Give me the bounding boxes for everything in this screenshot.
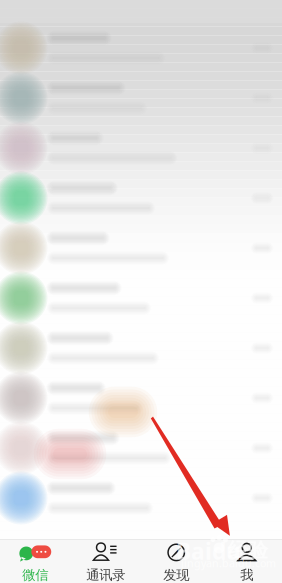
button[interactable]: 我 [211, 540, 282, 583]
button[interactable] [0, 123, 282, 173]
staticText: 经验 [228, 538, 268, 563]
button[interactable]: 通讯录 [70, 540, 141, 583]
staticText: 我 [240, 567, 253, 583]
button[interactable] [0, 73, 282, 123]
button[interactable] [0, 323, 282, 373]
button[interactable]: 发现 [141, 540, 211, 583]
button[interactable]: 微信 [0, 540, 70, 583]
staticText: 通讯录 [86, 567, 125, 583]
button[interactable] [0, 173, 282, 223]
button[interactable] [0, 273, 282, 323]
button[interactable] [0, 423, 282, 473]
button[interactable] [0, 373, 282, 423]
staticText: jingyan.baidu.com [181, 556, 276, 570]
staticText: 发现 [163, 567, 189, 583]
button[interactable] [0, 23, 282, 73]
button[interactable] [0, 473, 282, 523]
staticText: 微信 [22, 567, 48, 583]
staticText: Baidu [176, 536, 241, 566]
button[interactable] [0, 223, 282, 273]
